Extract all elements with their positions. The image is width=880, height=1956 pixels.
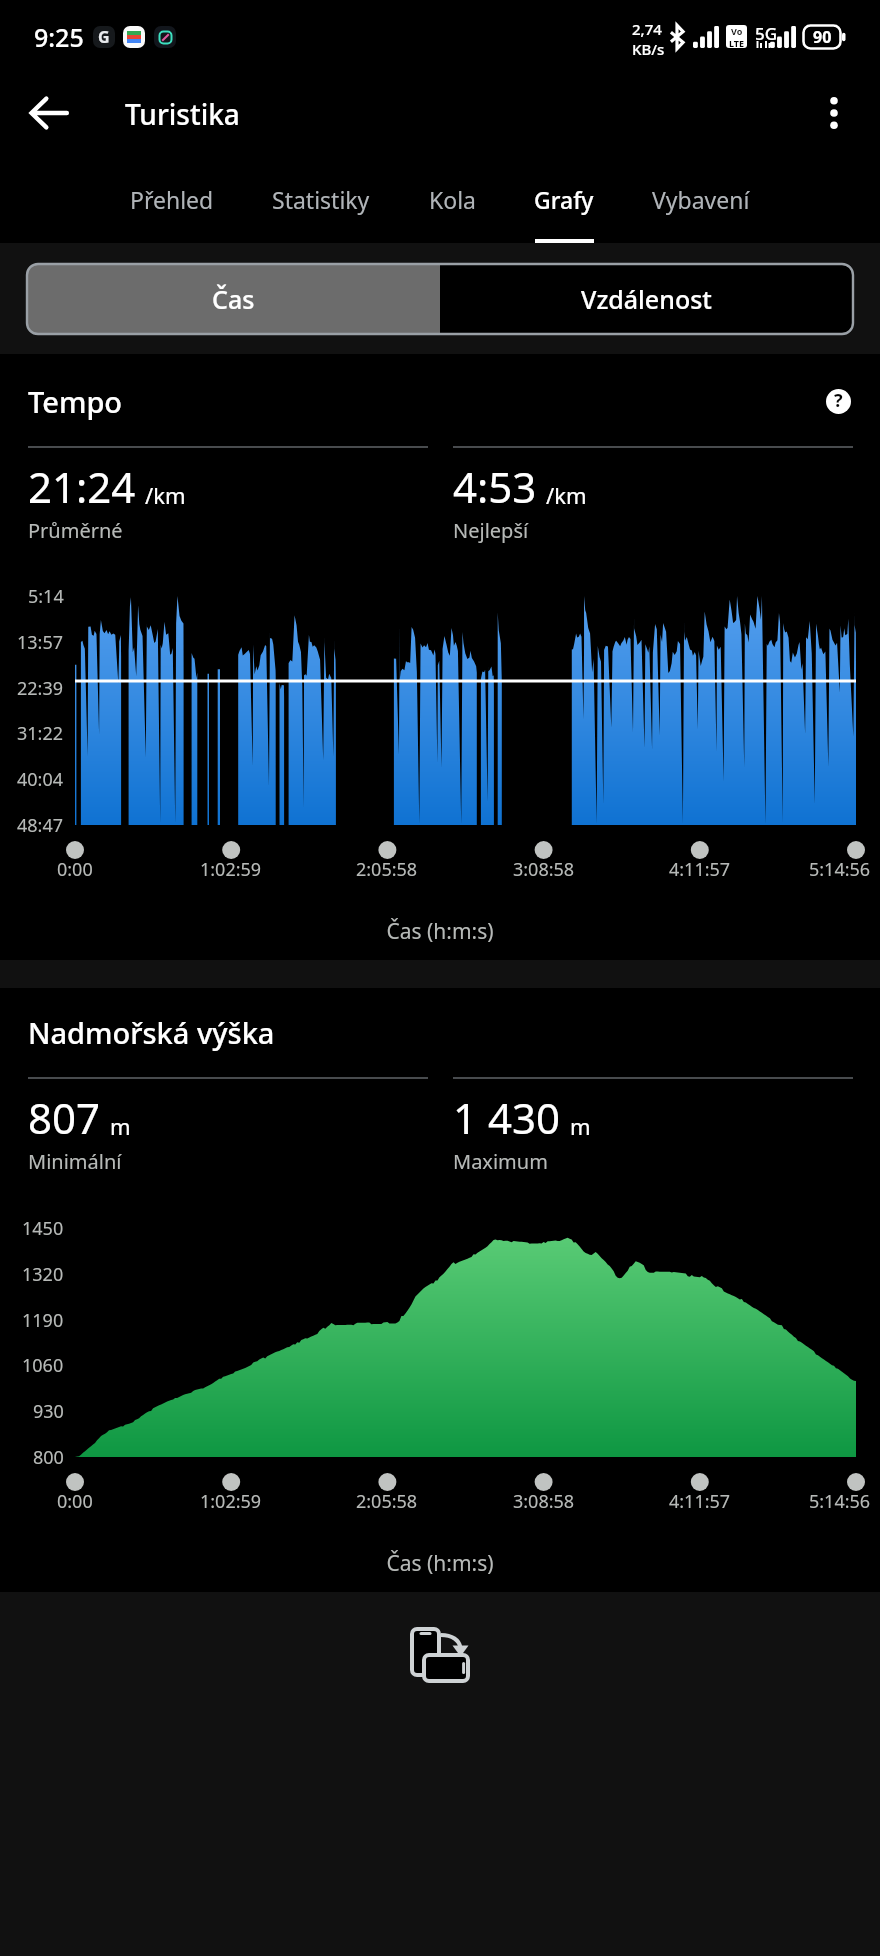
staticText: 5:14:56 (809, 1489, 871, 1514)
staticText: 3:08:58 (513, 857, 575, 882)
staticText: Čas (212, 282, 255, 316)
staticText: /km (145, 480, 186, 510)
staticText: 5:14 (28, 584, 64, 609)
staticText: Grafy (534, 184, 594, 215)
staticText: 0:00 (57, 1489, 93, 1514)
staticText: 1320 (22, 1262, 64, 1287)
staticText: Minimální (28, 1148, 122, 1175)
staticText: 1060 (22, 1353, 64, 1378)
staticText: 807 (28, 1089, 101, 1146)
button[interactable]: Tempo (28, 378, 123, 424)
staticText: Čas (h:m:s) (386, 1549, 494, 1578)
staticText: KB/s (632, 39, 665, 59)
staticText: Vzdálenost (581, 282, 712, 316)
staticText: Čas (h:m:s) (386, 917, 494, 946)
staticText: Nadmořská výška (28, 1013, 275, 1052)
staticText: Turistika (125, 95, 240, 133)
staticText: 13:57 (17, 630, 64, 655)
staticText: 31:22 (17, 721, 64, 746)
staticText: m (570, 1111, 591, 1141)
button[interactable]: Statistiky (272, 160, 370, 243)
staticText: Nejlepší (453, 517, 529, 544)
staticText: 21:24 (28, 458, 136, 515)
staticText: 90 (813, 26, 832, 48)
staticText: Přehled (130, 184, 214, 215)
staticText: 5:14:56 (809, 857, 871, 882)
staticText: 1:02:59 (200, 1489, 262, 1514)
staticText: 3:08:58 (513, 1489, 575, 1514)
staticText: 48:47 (17, 813, 64, 838)
staticText: ? (834, 389, 843, 413)
button[interactable]: Help (812, 375, 864, 427)
staticText: 1 430 (453, 1089, 561, 1146)
button[interactable]: More options (800, 79, 868, 147)
staticText: 1450 (22, 1216, 64, 1241)
staticText: 2:05:58 (356, 857, 418, 882)
button[interactable]: Back (15, 79, 83, 147)
staticText: Statistiky (272, 184, 370, 215)
staticText: 40:04 (17, 767, 64, 792)
staticText: LTE (729, 37, 745, 48)
staticText: 930 (33, 1399, 64, 1424)
staticText: 800 (33, 1445, 64, 1470)
staticText: Kola (429, 184, 476, 215)
staticText: 22:39 (17, 676, 64, 701)
staticText: 4:53 (453, 458, 537, 515)
staticText: Tempo (28, 382, 123, 421)
button[interactable]: Kola (429, 160, 476, 243)
staticText: m (110, 1111, 131, 1141)
button[interactable]: Čas (27, 264, 440, 334)
button[interactable]: Grafy (534, 160, 594, 243)
staticText: Vo (731, 25, 743, 37)
staticText: Průměrné (28, 517, 123, 544)
staticText: G (98, 26, 110, 48)
staticText: Vybavení (652, 184, 750, 215)
staticText: Maximum (453, 1148, 548, 1175)
button[interactable]: Vzdálenost (440, 264, 853, 334)
staticText: 1190 (22, 1308, 64, 1333)
staticText: 2,74 (632, 19, 662, 39)
staticText: 4:11:57 (669, 857, 731, 882)
button[interactable]: Rotate to landscape (408, 1625, 472, 1685)
staticText: 9:25 (34, 20, 84, 54)
staticText: 2:05:58 (356, 1489, 418, 1514)
staticText: /km (546, 480, 587, 510)
button[interactable]: Přehled (130, 160, 214, 243)
staticText: 1:02:59 (200, 857, 262, 882)
button[interactable]: Vybavení (652, 160, 750, 243)
button[interactable]: Nadmořská výška (28, 1009, 275, 1055)
staticText: 0:00 (57, 857, 93, 882)
staticText: 4:11:57 (669, 1489, 731, 1514)
staticText: 5G (755, 22, 778, 45)
